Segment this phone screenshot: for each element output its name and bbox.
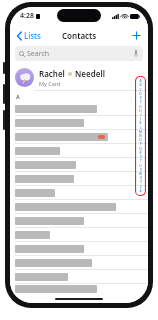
staticText: N [139, 134, 142, 138]
button[interactable] [10, 228, 148, 242]
staticText: B [139, 83, 142, 87]
button[interactable] [10, 186, 148, 200]
staticText: A [16, 93, 20, 100]
staticText: P [140, 142, 142, 146]
staticText: Y [140, 180, 142, 184]
staticText: U [139, 164, 142, 168]
staticText: R [139, 151, 142, 155]
button[interactable]: Search [15, 46, 143, 61]
button[interactable] [10, 130, 148, 144]
button[interactable] [10, 256, 148, 270]
staticText: Needell [75, 68, 105, 79]
staticText: S [140, 155, 142, 159]
staticText: V [140, 168, 142, 172]
staticText: D [139, 92, 142, 96]
staticText: Search [27, 49, 50, 59]
staticText: T [140, 159, 142, 163]
button[interactable]: Lists [15, 28, 43, 43]
staticText: O [139, 138, 142, 142]
staticText: L [140, 126, 142, 130]
staticText: Lists [24, 30, 41, 41]
staticText: Z [140, 185, 142, 189]
staticText: 4:28 [20, 11, 34, 21]
button[interactable] [10, 102, 148, 116]
staticText: Rachel [39, 68, 65, 79]
button[interactable] [10, 284, 148, 293]
staticText: M [139, 130, 142, 134]
staticText: J [140, 117, 141, 121]
staticText: G [139, 105, 142, 109]
staticText: C [139, 88, 142, 92]
button[interactable] [10, 214, 148, 228]
staticText: F [140, 100, 142, 104]
staticText: Contacts [62, 30, 97, 41]
button[interactable]: Alphabet index [139, 79, 142, 193]
button[interactable] [10, 200, 148, 214]
button[interactable] [10, 144, 148, 158]
button[interactable]: Add contact [129, 28, 143, 42]
staticText: A [139, 79, 142, 83]
staticText: E [140, 96, 142, 100]
button[interactable] [10, 242, 148, 256]
staticText: # [139, 189, 142, 193]
staticText: W [139, 172, 142, 176]
button[interactable] [10, 116, 148, 130]
button[interactable] [10, 172, 148, 186]
button[interactable]: Rachel [10, 64, 148, 90]
staticText: I [140, 113, 142, 117]
button[interactable] [10, 270, 148, 284]
button[interactable] [10, 158, 148, 172]
staticText: X [140, 176, 142, 180]
staticText: K [139, 121, 142, 125]
staticText: Q [139, 147, 142, 151]
staticText: H [139, 109, 142, 113]
staticText: My Card [39, 80, 61, 87]
